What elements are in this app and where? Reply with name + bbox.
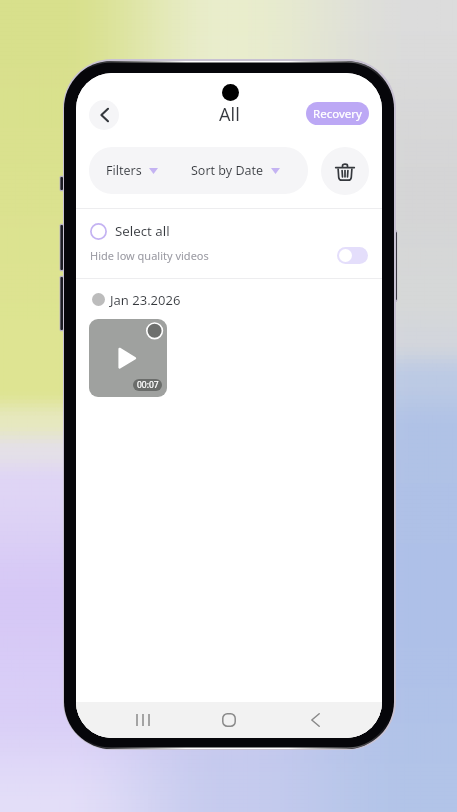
staticText: 00:07 (137, 379, 159, 391)
button[interactable]: Home (211, 702, 247, 738)
button[interactable]: Delete (321, 147, 369, 195)
staticText: Recovery (313, 106, 362, 122)
button[interactable]: Filters (89, 162, 169, 179)
staticText: Filters (106, 162, 142, 179)
button[interactable]: Video 00:07 (89, 319, 167, 397)
button[interactable]: Recents (125, 702, 161, 738)
button[interactable]: Recovery (306, 102, 369, 125)
button[interactable]: Select all (76, 217, 382, 245)
staticText: Hide low quality videos (90, 248, 209, 263)
staticText: Jan 23.2026 (110, 291, 181, 309)
button[interactable]: Hide low quality videos (76, 244, 382, 266)
staticText: Select all (115, 222, 170, 240)
staticText: All (219, 102, 240, 127)
button[interactable]: Back (297, 702, 333, 738)
button[interactable]: Back (89, 100, 119, 130)
button[interactable]: Sort by Date (191, 162, 292, 179)
staticText: Sort by Date (191, 162, 264, 179)
